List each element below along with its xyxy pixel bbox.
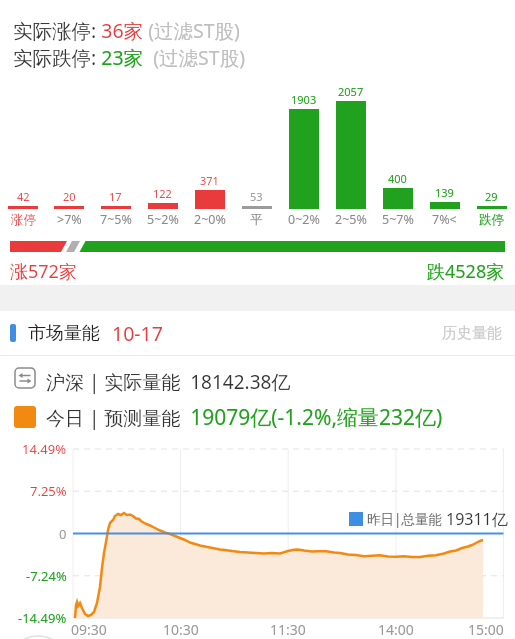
staticText: 42	[17, 189, 30, 204]
staticText: 5~7%	[382, 211, 414, 228]
staticText: 10:30	[163, 620, 199, 639]
staticText: 市场量能	[28, 322, 100, 345]
staticText: 今日 | 预测量能 19079亿(-1.2%,缩量232亿)	[46, 403, 443, 432]
button[interactable]: 市场量能	[0, 311, 515, 355]
staticText: 11:30	[270, 620, 306, 639]
staticText: 7~5%	[100, 211, 132, 228]
staticText: 17	[109, 189, 122, 204]
staticText: 5~2%	[147, 211, 179, 228]
staticText: 1903	[291, 92, 317, 107]
staticText: 122	[153, 186, 172, 201]
staticText: 371	[200, 173, 219, 188]
button[interactable]: 沪深 | 实际量能 18142.38亿	[0, 356, 515, 400]
staticText: 实际跌停: 23家 (过滤ST股)	[13, 44, 245, 71]
staticText: 实际涨停: 36家 (过滤ST股)	[13, 17, 240, 44]
staticText: 14.49%	[22, 440, 67, 458]
staticText: 7%<	[432, 211, 457, 228]
staticText: 2~0%	[194, 211, 226, 228]
button[interactable]: 今日 | 预测量能 19079亿(-1.2%,缩量232亿)	[0, 400, 515, 440]
button[interactable]: 昨日|总量能	[349, 508, 508, 530]
staticText: 19311亿	[446, 508, 508, 530]
staticText: 10-17	[112, 320, 163, 347]
staticText: 7.25%	[30, 482, 67, 500]
staticText: 2~5%	[335, 211, 367, 228]
staticText: 跌4528家	[427, 259, 505, 284]
staticText: 昨日|总量能	[367, 510, 446, 528]
staticText: 涨572家	[10, 259, 77, 284]
staticText: 0~2%	[288, 211, 320, 228]
staticText: 平	[250, 212, 263, 228]
staticText: 0	[59, 525, 67, 543]
staticText: 跌停	[479, 212, 504, 228]
staticText: 历史量能	[442, 324, 502, 343]
staticText: 09:30	[71, 620, 107, 639]
staticText: 20	[63, 189, 76, 204]
staticText: 53	[250, 189, 263, 204]
staticText: -7.24%	[26, 567, 67, 585]
staticText: 15:00	[468, 620, 504, 639]
staticText: >7%	[57, 211, 82, 228]
staticText: 400	[388, 171, 407, 186]
staticText: 14:00	[378, 620, 414, 639]
staticText: 29	[485, 189, 498, 204]
staticText: -14.49%	[18, 609, 67, 627]
staticText: 139	[435, 185, 454, 200]
staticText: 沪深 | 实际量能 18142.38亿	[46, 369, 291, 395]
staticText: 涨停	[11, 212, 36, 228]
staticText: 2057	[338, 84, 364, 99]
